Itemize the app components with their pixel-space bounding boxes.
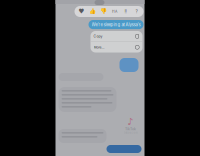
- button[interactable]: Copy: [90, 31, 142, 41]
- button[interactable]: Love: [76, 6, 87, 17]
- button[interactable]: Question: [131, 6, 142, 17]
- staticText: More...: [93, 45, 104, 49]
- staticText: 👎: [100, 8, 107, 15]
- staticText: ♪: [127, 116, 133, 127]
- button[interactable]: More...: [90, 42, 142, 52]
- staticText: 👍: [89, 8, 96, 15]
- button[interactable]: Dislike: [98, 6, 109, 17]
- staticText: HA: [112, 9, 117, 14]
- button[interactable]: Laugh: [109, 6, 120, 17]
- staticText: Copy: [93, 34, 102, 38]
- staticText: !!: [124, 9, 126, 14]
- staticText: We're sleeping at Alyssa's: [91, 22, 140, 27]
- staticText: TikTok: [125, 127, 136, 131]
- button[interactable]: Like: [87, 6, 98, 17]
- staticText: ♥: [78, 8, 84, 15]
- button[interactable]: Emphasize: [120, 6, 131, 17]
- staticText: ?: [135, 9, 137, 14]
